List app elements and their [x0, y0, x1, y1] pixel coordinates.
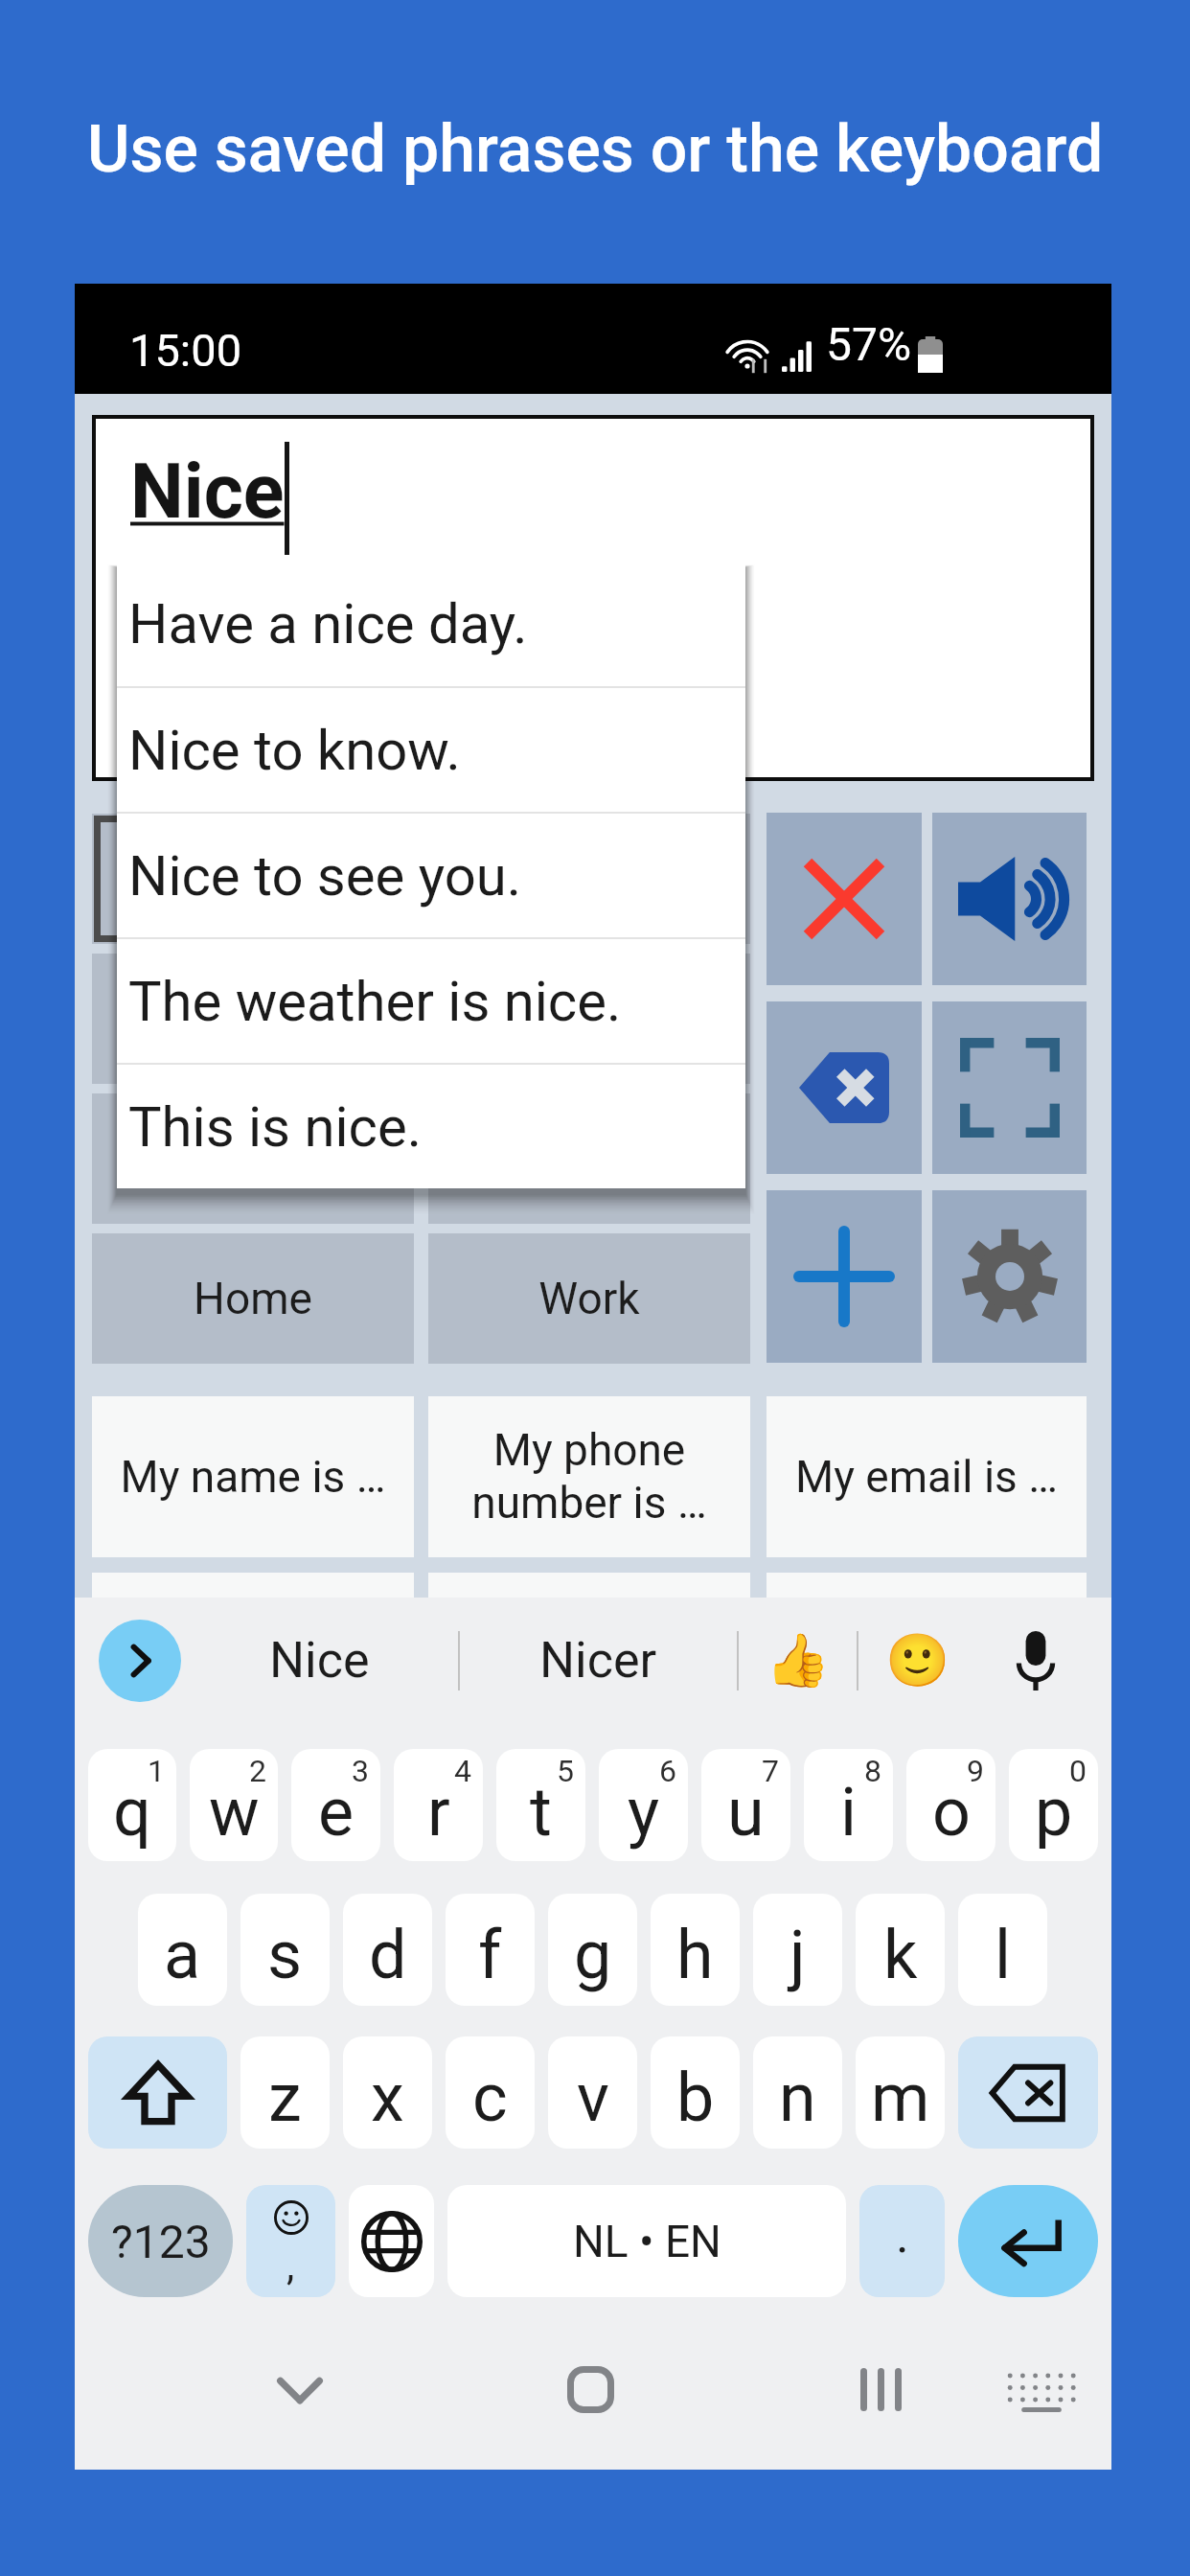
- button[interactable]: s: [240, 1894, 330, 2006]
- staticText: 57%: [826, 317, 912, 371]
- staticText: 7: [762, 1753, 779, 1789]
- button[interactable]: g: [548, 1894, 637, 2006]
- button[interactable]: [428, 1573, 750, 1734]
- button[interactable]: The weather is nice.: [117, 939, 745, 1063]
- staticText: t: [530, 1773, 552, 1851]
- staticText: 2: [249, 1753, 266, 1789]
- button[interactable]: 🙂: [858, 1598, 976, 1723]
- button[interactable]: k: [856, 1894, 945, 2006]
- button[interactable]: j: [753, 1894, 842, 2006]
- button[interactable]: ?123: [88, 2185, 233, 2297]
- staticText: c: [472, 2058, 508, 2137]
- button[interactable]: Nice: [181, 1598, 458, 1723]
- button[interactable]: c: [446, 2036, 535, 2149]
- button[interactable]: Hide keyboard: [214, 2310, 386, 2470]
- button[interactable]: Backspace: [958, 2036, 1098, 2149]
- button[interactable]: a: [138, 1894, 227, 2006]
- button[interactable]: [92, 814, 414, 944]
- button[interactable]: u: [701, 1749, 790, 1861]
- button[interactable]: Change language: [349, 2185, 434, 2297]
- button[interactable]: z: [240, 2036, 330, 2149]
- button[interactable]: My email is …: [767, 1396, 1087, 1557]
- button[interactable]: Shift: [88, 2036, 227, 2149]
- staticText: j: [790, 1916, 806, 1994]
- button[interactable]: More suggestions: [99, 1620, 181, 1702]
- button[interactable]: p: [1009, 1749, 1098, 1861]
- button[interactable]: This is nice.: [117, 1065, 745, 1188]
- staticText: g: [574, 1916, 612, 1994]
- button[interactable]: Speak: [932, 813, 1087, 985]
- staticText: l: [995, 1916, 1012, 1994]
- button[interactable]: Voice input: [976, 1598, 1094, 1723]
- button[interactable]: i: [804, 1749, 893, 1861]
- button[interactable]: Enter: [958, 2185, 1098, 2297]
- button[interactable]: [92, 1573, 414, 1734]
- staticText: 8: [864, 1753, 881, 1789]
- button[interactable]: [767, 1573, 1087, 1734]
- button[interactable]: My name is …: [92, 1396, 414, 1557]
- staticText: n: [779, 2058, 816, 2137]
- button[interactable]: [428, 1093, 750, 1224]
- button[interactable]: Emoji: [246, 2185, 335, 2297]
- staticText: s: [267, 1916, 303, 1994]
- staticText: My name is …: [120, 1451, 386, 1503]
- button[interactable]: r: [394, 1749, 483, 1861]
- button[interactable]: Add phrase: [767, 1190, 922, 1363]
- staticText: k: [883, 1916, 918, 1994]
- button[interactable]: m: [856, 2036, 945, 2149]
- button[interactable]: 👍: [739, 1598, 857, 1723]
- staticText: My email is …: [795, 1451, 1058, 1503]
- staticText: Nice: [269, 1631, 370, 1690]
- button[interactable]: My phone number is …: [428, 1396, 750, 1557]
- staticText: 6: [659, 1753, 676, 1789]
- button[interactable]: b: [651, 2036, 740, 2149]
- button[interactable]: Recents: [794, 2310, 967, 2470]
- staticText: f: [478, 1916, 502, 1994]
- button[interactable]: Nice to see you.: [117, 814, 745, 937]
- staticText: 0: [1069, 1753, 1087, 1789]
- button[interactable]: d: [343, 1894, 432, 2006]
- button[interactable]: [428, 954, 750, 1084]
- staticText: q: [113, 1773, 151, 1851]
- button[interactable]: .: [859, 2185, 945, 2297]
- staticText: The weather is nice.: [128, 969, 622, 1034]
- button[interactable]: Nice to know.: [117, 688, 745, 812]
- staticText: Nice to see you.: [128, 843, 522, 908]
- button[interactable]: [92, 954, 414, 1084]
- button[interactable]: f: [446, 1894, 535, 2006]
- staticText: m: [871, 2058, 930, 2137]
- button[interactable]: Home: [92, 1233, 414, 1364]
- button[interactable]: y: [599, 1749, 688, 1861]
- button[interactable]: e: [291, 1749, 380, 1861]
- button[interactable]: v: [548, 2036, 637, 2149]
- button[interactable]: q: [88, 1749, 176, 1861]
- button[interactable]: t: [496, 1749, 585, 1861]
- staticText: Work: [538, 1273, 640, 1324]
- button[interactable]: Keyboard layout: [955, 2310, 1128, 2470]
- button[interactable]: l: [958, 1894, 1047, 2006]
- staticText: x: [371, 2058, 404, 2137]
- button[interactable]: w: [190, 1749, 278, 1861]
- button[interactable]: o: [906, 1749, 995, 1861]
- staticText: My phone number is …: [471, 1424, 707, 1529]
- staticText: 15:00: [129, 324, 242, 377]
- button[interactable]: Settings: [932, 1190, 1087, 1363]
- button[interactable]: [92, 1093, 414, 1224]
- button[interactable]: Have a nice day.: [117, 562, 745, 686]
- button[interactable]: Nice: [92, 415, 1094, 781]
- button[interactable]: Work: [428, 1233, 750, 1364]
- button[interactable]: Full screen: [932, 1001, 1087, 1174]
- button[interactable]: Nicer: [460, 1598, 737, 1723]
- button[interactable]: x: [343, 2036, 432, 2149]
- button[interactable]: h: [651, 1894, 740, 2006]
- button[interactable]: [428, 814, 750, 944]
- staticText: This is nice.: [128, 1094, 422, 1160]
- button[interactable]: Backspace: [767, 1001, 922, 1174]
- button[interactable]: Clear text: [767, 813, 922, 985]
- staticText: .: [896, 2206, 909, 2265]
- button[interactable]: Home: [504, 2310, 676, 2470]
- button[interactable]: NL • EN: [447, 2185, 846, 2297]
- staticText: ?123: [111, 2215, 211, 2268]
- staticText: 👍: [766, 1630, 831, 1690]
- button[interactable]: n: [753, 2036, 842, 2149]
